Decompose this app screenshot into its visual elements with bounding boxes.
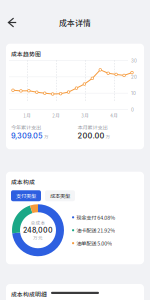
staticText: 支付类型: [16, 192, 36, 200]
staticText: 万元: [33, 234, 43, 241]
button[interactable]: 成本类型: [45, 190, 75, 201]
staticText: 油单配送 5.00%: [76, 239, 112, 247]
staticText: 总成本: [30, 219, 45, 226]
staticText: 1月: [23, 112, 31, 119]
staticText: 成本趋势图: [11, 50, 41, 58]
staticText: 200.00: [77, 131, 104, 140]
staticText: 30: [131, 58, 137, 63]
staticText: 成本构成明细: [11, 290, 47, 298]
staticText: 本月累计支出: [77, 123, 107, 131]
staticText: 成本详情: [59, 17, 91, 28]
staticText: 万: [44, 133, 49, 140]
staticText: 成本类型: [50, 192, 70, 200]
staticText: 20: [131, 74, 137, 80]
button[interactable]: 支付类型: [11, 190, 41, 201]
staticText: 成本构成: [11, 178, 35, 186]
button[interactable]: Back: [2, 12, 22, 32]
staticText: 万: [105, 133, 110, 140]
staticText: 248,000: [23, 226, 53, 234]
staticText: 今年累计支出: [11, 123, 41, 131]
staticText: 9,309.05: [11, 131, 43, 140]
staticText: 0: [131, 107, 134, 112]
staticText: 油卡配送 21.92%: [76, 226, 115, 234]
staticText: 3月: [81, 112, 89, 119]
staticText: 4月: [110, 112, 118, 119]
staticText: 现金支付 64.08%: [76, 213, 115, 221]
staticText: 2月: [52, 112, 60, 119]
staticText: 10: [131, 91, 136, 96]
